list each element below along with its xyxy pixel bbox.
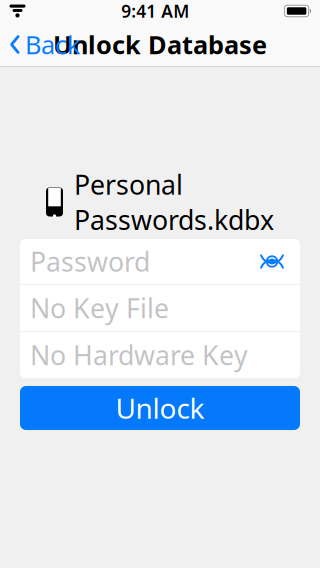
button[interactable]: Unlock <box>20 386 300 430</box>
staticText: Personal Passwords.kdbx <box>74 167 274 237</box>
staticText: No Hardware Key <box>30 337 248 373</box>
staticText: No Key File <box>30 290 169 326</box>
button[interactable]: No Hardware Key <box>20 332 300 378</box>
staticText: Unlock Database <box>53 28 267 61</box>
staticText: Back <box>25 28 81 61</box>
button[interactable]: Show password <box>254 245 290 277</box>
staticText: 9:41 AM <box>121 0 189 22</box>
staticText: Password <box>30 244 150 279</box>
staticText: Unlock <box>115 389 204 427</box>
button[interactable]: No Key File <box>20 285 300 331</box>
button[interactable]: Back <box>0 22 89 67</box>
